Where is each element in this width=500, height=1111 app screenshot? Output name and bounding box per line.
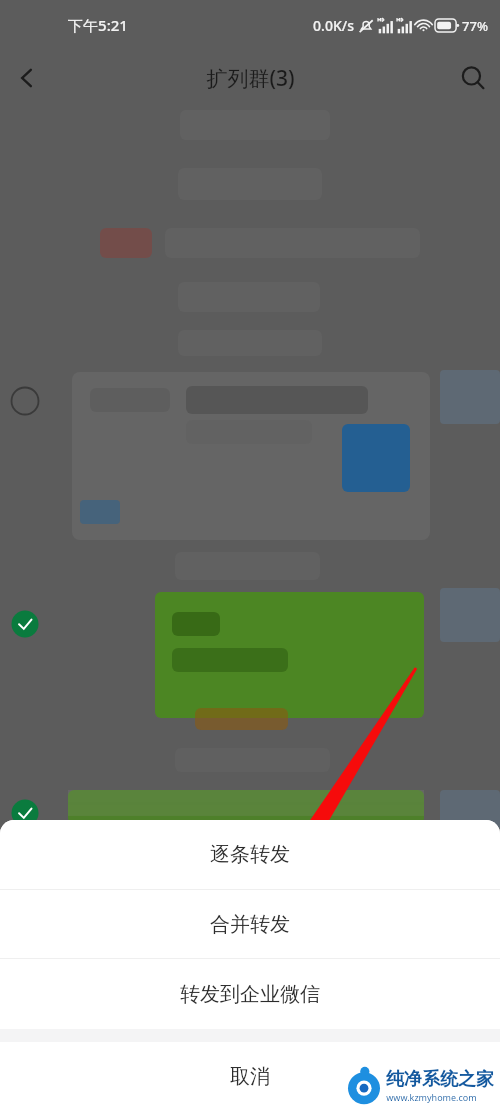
button[interactable]: 合并转发 (0, 890, 500, 958)
staticText: 逐条转发 (210, 842, 290, 867)
staticText: 合并转发 (210, 912, 290, 937)
staticText: 取消 (230, 1064, 270, 1089)
button[interactable]: 取消 (0, 1042, 500, 1111)
staticText: 扩列群(3) (206, 64, 295, 93)
button[interactable]: Search (446, 51, 500, 105)
staticText: 77% (462, 17, 488, 35)
staticText: 纯净系统之家 (386, 1068, 494, 1091)
staticText: 下午5:21 (68, 15, 128, 35)
staticText: 0.0K/s (313, 16, 354, 35)
staticText: 转发到企业微信 (180, 982, 320, 1007)
staticText: www.kzmyhome.com (386, 1091, 477, 1103)
button[interactable]: 转发到企业微信 (0, 959, 500, 1029)
button[interactable]: 逐条转发 (0, 820, 500, 889)
button[interactable]: Back (0, 51, 54, 105)
